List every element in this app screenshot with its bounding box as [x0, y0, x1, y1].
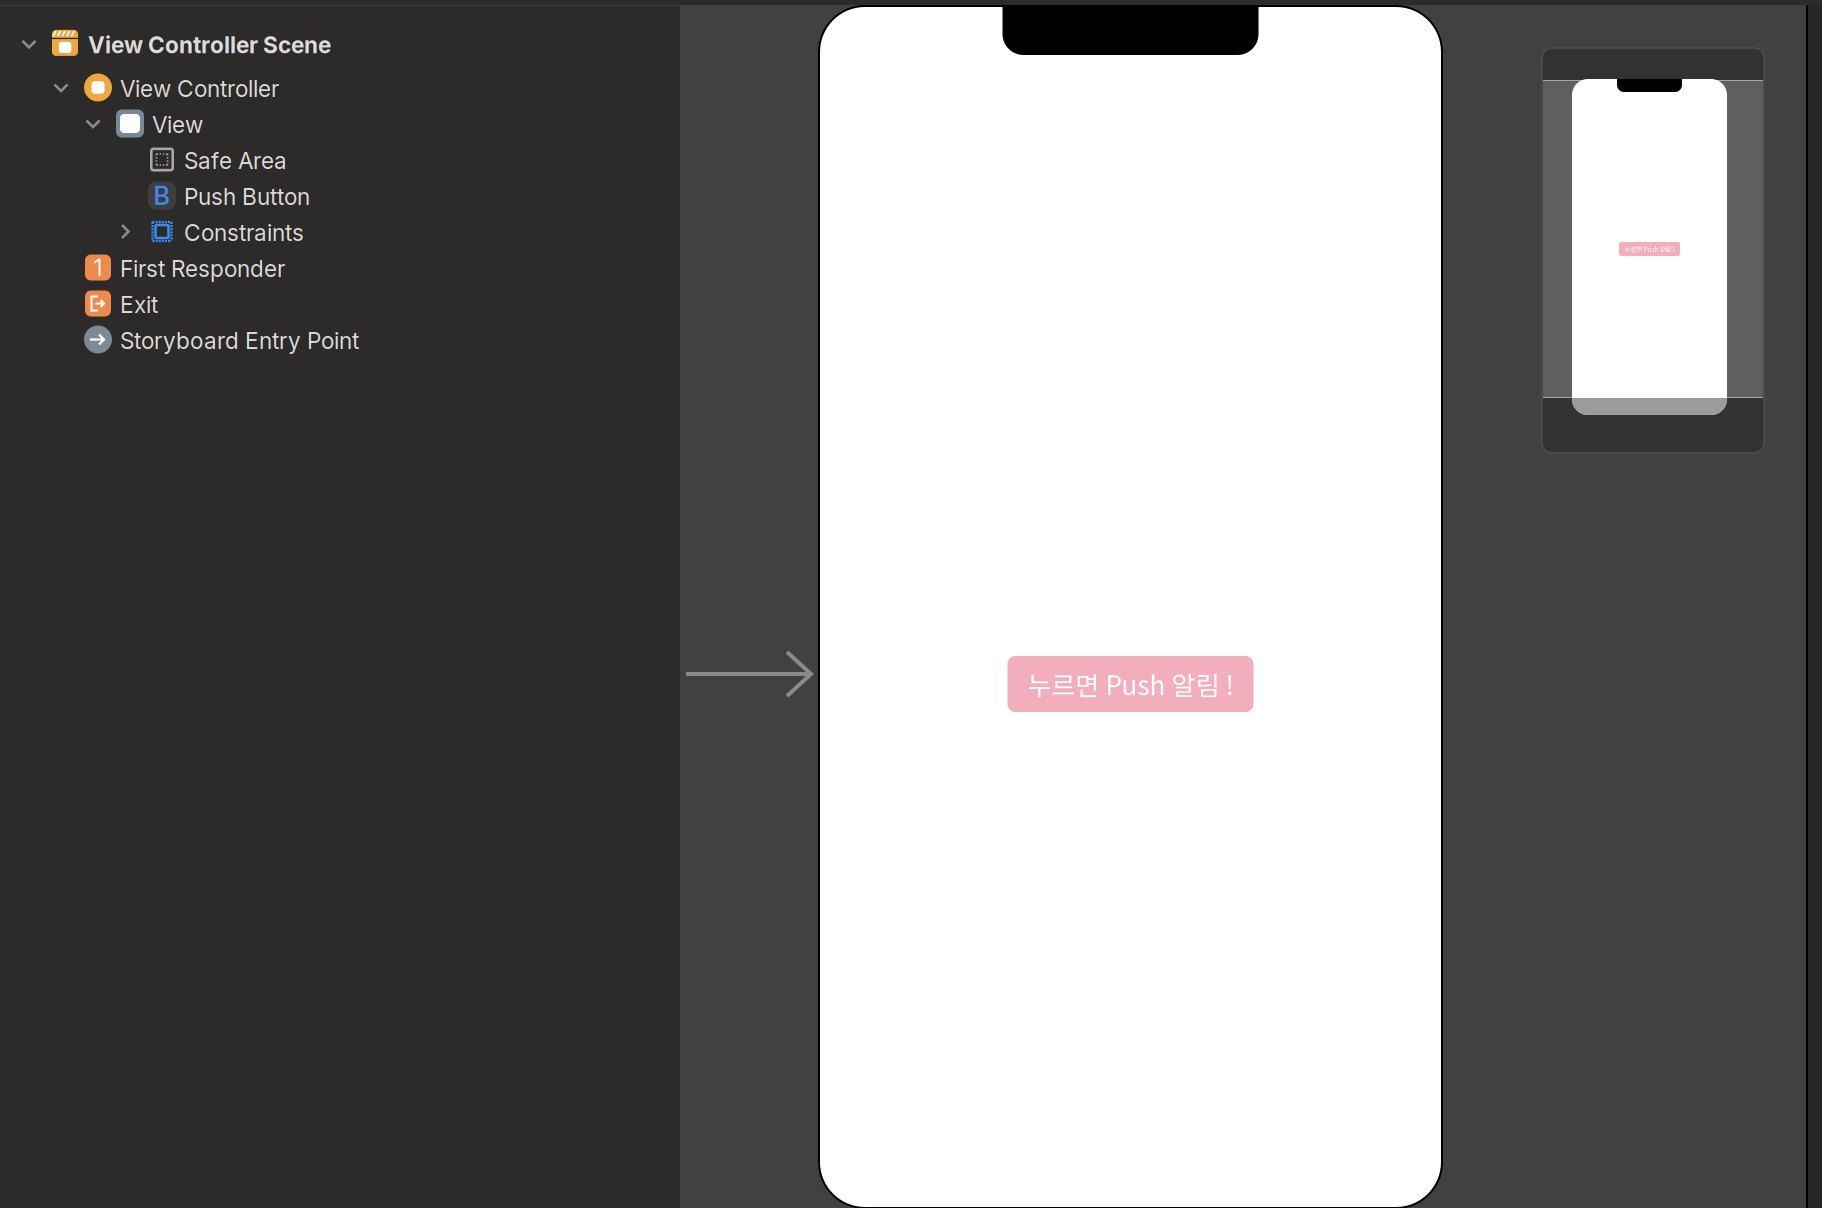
staticText: Exit	[120, 291, 158, 318]
staticText: 누르면 Push 알림 !	[1624, 244, 1674, 254]
button[interactable]: 누르면 Push 알림 !	[1007, 656, 1253, 712]
button[interactable]: Exit	[0, 285, 680, 321]
button[interactable]: Constraints	[0, 213, 680, 249]
staticText: Safe Area	[184, 147, 287, 174]
staticText: 누르면 Push 알림 !	[1027, 665, 1233, 703]
staticText: Push Button	[184, 183, 310, 210]
staticText: View	[152, 111, 203, 138]
button[interactable]: View	[0, 105, 680, 141]
button[interactable]: Storyboard Entry Point	[0, 321, 680, 357]
button[interactable]: View Controller	[0, 69, 680, 105]
staticText: View Controller Scene	[88, 31, 331, 59]
button[interactable]: 1	[0, 249, 680, 285]
button[interactable]: Safe Area	[0, 141, 680, 177]
staticText: B	[153, 180, 170, 211]
button[interactable]: 누르면 Push 알림 !	[1619, 242, 1680, 256]
button[interactable]: View Controller Scene	[0, 26, 680, 62]
button[interactable]: B	[0, 177, 680, 213]
staticText: 1	[93, 254, 102, 281]
staticText: Constraints	[184, 219, 304, 246]
staticText: Storyboard Entry Point	[120, 327, 359, 354]
staticText: View Controller	[120, 75, 279, 102]
staticText: First Responder	[120, 255, 285, 282]
